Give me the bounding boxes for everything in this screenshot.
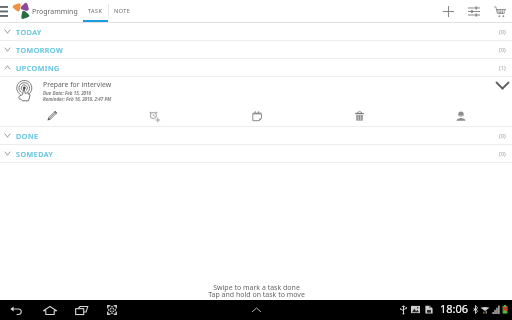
staticText: (0) [499,46,506,54]
button[interactable]: Expand notifications [250,300,262,320]
button[interactable]: Add [436,0,460,23]
button[interactable]: TASK [83,0,108,23]
button[interactable]: DONE [0,127,512,144]
button[interactable]: Set date [206,106,308,126]
button[interactable]: Delete [308,106,410,126]
button[interactable]: NOTE [110,0,135,23]
staticText: Swipe to mark a task done [213,283,300,293]
staticText: Programming [32,7,78,17]
staticText: NOTE [114,7,131,15]
button[interactable]: Prepare for interview [0,77,512,106]
button[interactable]: Filter settings [462,0,486,23]
button[interactable]: Back [4,300,28,320]
button[interactable]: TOMORROW [0,41,512,58]
staticText: (0) [499,28,506,36]
button[interactable]: Set reminder [103,106,206,126]
staticText: (0) [499,132,506,140]
button[interactable]: Home [38,300,62,320]
staticText: Tap and hold on task to move [208,290,305,300]
button[interactable]: SOMEDAY [0,145,512,162]
button[interactable]: TODAY [0,23,512,40]
staticText: (1) [499,64,506,72]
button[interactable]: Assign [410,106,512,126]
button[interactable]: Screenshot [100,300,124,320]
button[interactable]: Shop [488,0,512,23]
staticText: TASK [88,7,103,15]
button[interactable]: Edit [0,106,103,126]
staticText: Prepare for interview [43,80,112,89]
staticText: TODAY [16,27,42,37]
staticText: DONE [16,131,39,141]
staticText: Due Date: Feb 15, 2016 [43,90,92,96]
staticText: (0) [499,150,506,158]
button[interactable]: Menu [0,0,12,23]
button[interactable]: UPCOMING [0,59,512,76]
staticText: 18:06 [440,301,469,316]
button[interactable]: Collapse task [491,75,512,95]
staticText: UPCOMING [16,63,60,73]
staticText: TOMORROW [16,45,64,55]
staticText: Reminder: Feb 16, 2016, 2:47 PM [43,96,112,102]
button[interactable]: Recent apps [69,300,93,320]
staticText: SOMEDAY [16,149,54,159]
